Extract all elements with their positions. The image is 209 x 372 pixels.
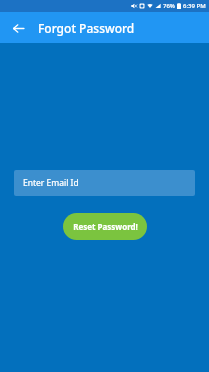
staticText: 6:39 PM — [183, 2, 206, 10]
staticText: Forgot Password — [38, 20, 135, 36]
staticText: 76% — [163, 2, 175, 10]
staticText: Enter Email Id — [23, 177, 79, 189]
button[interactable]: Enter Email Id — [14, 170, 195, 196]
staticText: Reset Password! — [73, 221, 138, 232]
button[interactable]: Reset Password! — [63, 213, 147, 240]
button[interactable]: Back — [6, 16, 30, 40]
